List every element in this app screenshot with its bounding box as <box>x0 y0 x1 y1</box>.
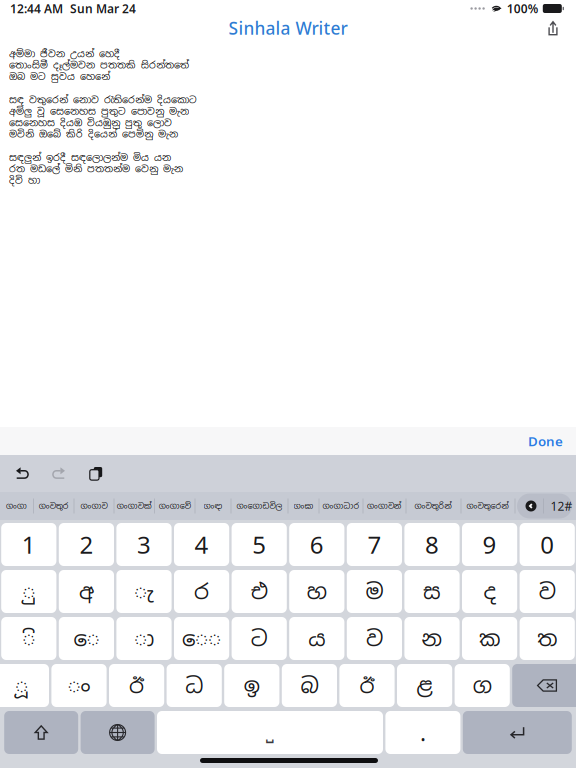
button[interactable]: Done <box>516 425 575 457</box>
staticText: 0 <box>540 529 554 560</box>
staticText: 4 <box>195 529 209 560</box>
staticText: 12# <box>550 498 572 514</box>
staticText: ගංගාවන් <box>367 501 402 511</box>
button[interactable]: Delete <box>512 664 576 707</box>
button[interactable]: ගංවතුරෙන් <box>461 492 515 520</box>
button[interactable]: ගංවතුර <box>34 492 74 520</box>
button[interactable]: ගංඳා <box>195 492 231 520</box>
button[interactable]: ත <box>520 617 575 660</box>
button[interactable]: 2 <box>59 523 114 566</box>
button[interactable]: ෙ◌ <box>174 617 229 660</box>
staticText: ⎵ <box>266 723 274 742</box>
button[interactable]: 6 <box>289 523 344 566</box>
button[interactable]: ළ <box>397 664 452 707</box>
button[interactable]: ගංගාවන් <box>363 492 406 520</box>
staticText: ඊ <box>359 672 374 699</box>
staticText: ගංවතුරින් <box>414 501 452 511</box>
staticText: 7 <box>367 529 381 560</box>
staticText: Sinhala Writer <box>228 16 347 39</box>
staticText: ක <box>479 625 500 652</box>
button[interactable]: ⎵ <box>157 711 383 754</box>
button[interactable]: 1 <box>1 523 56 566</box>
button[interactable]: ක <box>462 617 517 660</box>
button[interactable]: න <box>404 617 460 660</box>
button[interactable]: ගංගොඩවිල <box>231 492 288 520</box>
staticText: 8 <box>425 529 439 560</box>
staticText: ර <box>194 578 209 605</box>
button[interactable]: ග <box>455 664 510 707</box>
staticText: තොංසිමී දෑල්මවන පතතකි සිරන්තතේ <box>9 59 189 71</box>
button[interactable]: ව <box>520 570 575 613</box>
button[interactable]: ◌ු <box>1 570 56 613</box>
button[interactable]: ඉ <box>224 664 279 707</box>
staticText: ගංඳා <box>203 501 222 511</box>
button[interactable]: ස <box>404 570 460 613</box>
staticText: දිවි හා <box>9 174 40 186</box>
staticText: Done <box>528 432 563 450</box>
button[interactable]: Redo <box>43 457 75 489</box>
button[interactable]: අ <box>59 570 114 613</box>
button[interactable]: ගංගාවේ <box>155 492 195 520</box>
staticText: ට <box>251 625 268 652</box>
button[interactable]: ඊ <box>109 664 164 707</box>
button[interactable]: ◌ි <box>1 617 56 660</box>
button[interactable]: ං <box>51 664 107 707</box>
button[interactable]: ◌ා <box>116 617 172 660</box>
button[interactable]: ගංගාව <box>74 492 114 520</box>
button[interactable]: බ <box>282 664 337 707</box>
button[interactable]: ◌ෙ <box>59 617 114 660</box>
staticText: හ <box>307 578 327 605</box>
staticText: ගංගාව <box>80 501 107 511</box>
button[interactable]: ඊ <box>339 664 395 707</box>
staticText: ඊ <box>129 672 144 699</box>
button[interactable]: 7 <box>347 523 402 566</box>
button[interactable]: එ <box>232 570 287 613</box>
staticText: ◌ු <box>22 578 35 605</box>
button[interactable]: Share <box>536 15 570 41</box>
button[interactable]: හ <box>289 570 344 613</box>
staticText: ඉ <box>244 672 260 699</box>
staticText: ගංගාවක් <box>117 501 152 511</box>
button[interactable]: ද <box>462 570 517 613</box>
staticText: සඳලුන් ඉරදී සඳලොලන්ම මිය යන <box>9 151 171 164</box>
button[interactable]: ව <box>347 617 402 660</box>
button[interactable]: 8 <box>404 523 460 566</box>
button[interactable]: ය <box>289 617 344 660</box>
button[interactable]: ර <box>174 570 229 613</box>
staticText: ය <box>308 625 325 652</box>
button[interactable]: . <box>385 711 460 754</box>
button[interactable]: Shift <box>4 711 78 754</box>
button[interactable]: 4 <box>174 523 229 566</box>
button[interactable]: ධ <box>167 664 222 707</box>
button[interactable]: Numeric keyboard <box>517 493 572 518</box>
button[interactable]: ගංගාවක් <box>114 492 155 520</box>
button[interactable]: ගංඝා <box>288 492 319 520</box>
staticText: ◌ූ <box>15 672 28 699</box>
button[interactable]: 3 <box>116 523 172 566</box>
button[interactable]: ◌ූ <box>0 664 49 707</box>
button[interactable]: ගංවතුරින් <box>406 492 461 520</box>
staticText: ග <box>473 672 492 699</box>
button[interactable]: 5 <box>232 523 287 566</box>
button[interactable]: Paste <box>80 457 112 489</box>
button[interactable]: Next keyboard <box>81 711 155 754</box>
button[interactable]: Return <box>463 711 572 754</box>
staticText: ◌ැ <box>134 578 154 605</box>
staticText: ළ <box>417 672 433 699</box>
staticText: ව <box>539 578 556 605</box>
staticText: එ <box>251 578 268 605</box>
button[interactable]: ගංගා <box>0 492 34 520</box>
button[interactable]: ගංගාධාර <box>319 492 363 520</box>
button[interactable]: ම <box>347 570 402 613</box>
staticText: 1 <box>22 529 36 560</box>
button[interactable]: ට <box>232 617 287 660</box>
button[interactable]: 0 <box>520 523 575 566</box>
staticText: සඳ වතුරෙන් නොව රැතිරෙන්ම දියකොට <box>9 94 197 106</box>
staticText: න <box>421 625 442 652</box>
button[interactable]: 9 <box>462 523 517 566</box>
staticText: ෙ◌ <box>182 625 221 652</box>
button[interactable]: Undo <box>6 457 38 489</box>
staticText: ගංගාවේ <box>159 501 191 511</box>
staticText: 2 <box>79 529 93 560</box>
button[interactable]: ◌ැ <box>116 570 172 613</box>
